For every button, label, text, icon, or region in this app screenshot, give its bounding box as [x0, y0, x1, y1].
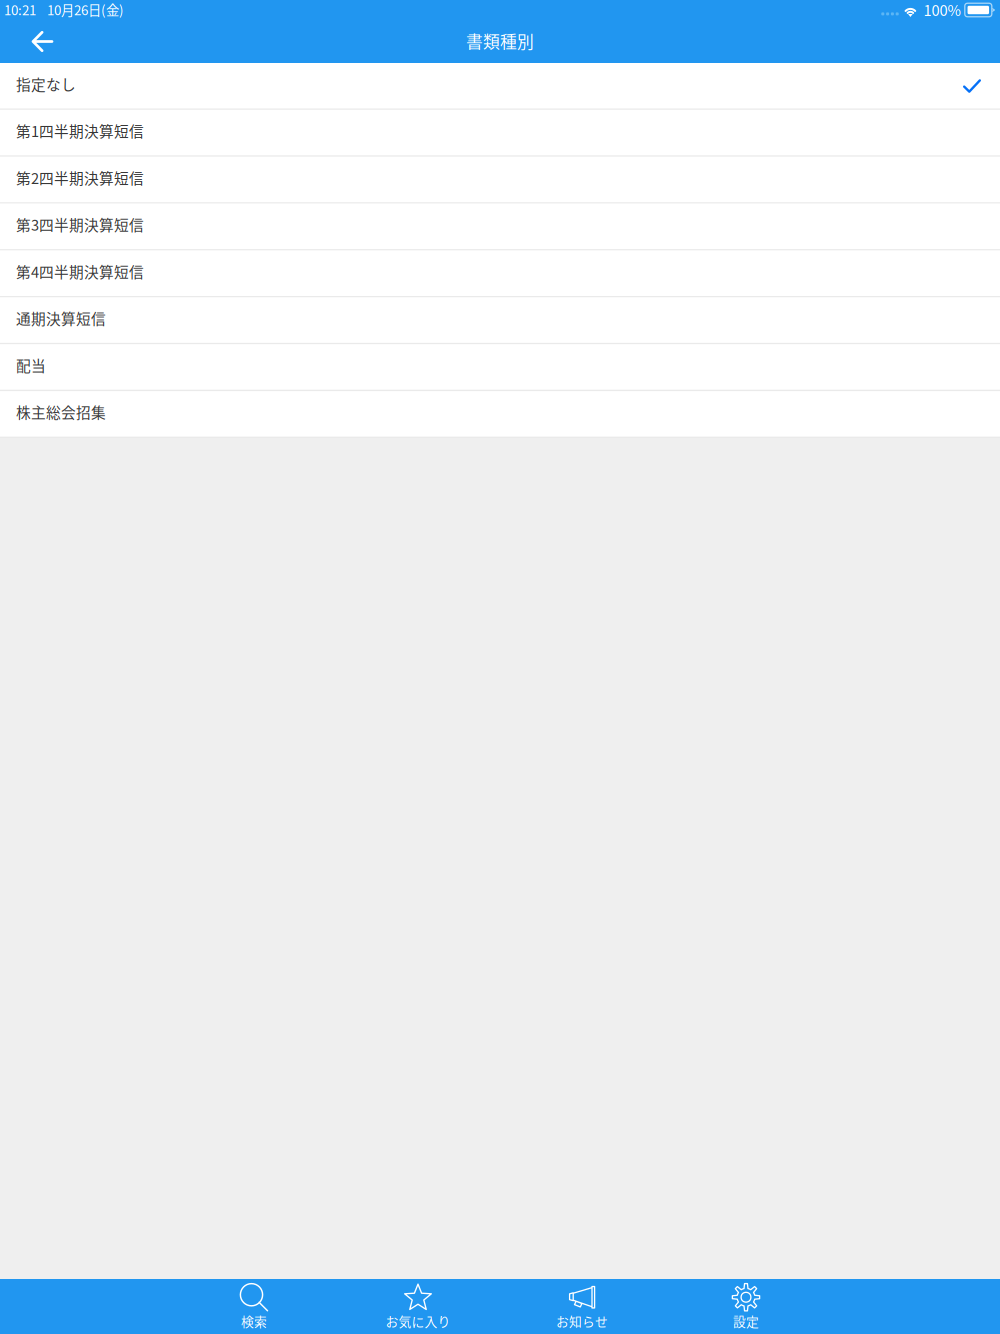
button[interactable]: 検索 [172, 1279, 336, 1334]
staticText: 10:21 [4, 0, 36, 19]
staticText: お知らせ [556, 1312, 608, 1330]
button[interactable]: 設定 [664, 1279, 828, 1334]
staticText: 第2四半期決算短信 [16, 167, 144, 188]
staticText: 通期決算短信 [16, 307, 106, 329]
staticText: 配当 [16, 354, 46, 376]
button[interactable]: 第3四半期決算短信 [0, 204, 1000, 250]
button[interactable]: 第4四半期決算短信 [0, 250, 1000, 297]
staticText: 指定なし [16, 73, 76, 94]
button[interactable]: 第2四半期決算短信 [0, 157, 1000, 204]
button[interactable]: 第1四半期決算短信 [0, 110, 1000, 157]
staticText: 書類種別 [466, 29, 534, 53]
staticText: 100% [924, 0, 962, 20]
staticText: 検索 [241, 1312, 267, 1330]
button[interactable]: 指定なし [0, 63, 1000, 110]
button[interactable]: 配当 [0, 344, 1000, 391]
button[interactable]: 通期決算短信 [0, 297, 1000, 344]
button[interactable]: 株主総会招集 [0, 391, 1000, 438]
staticText: 第4四半期決算短信 [16, 261, 144, 282]
staticText: 株主総会招集 [16, 401, 106, 422]
staticText: 第1四半期決算短信 [16, 120, 144, 141]
button[interactable]: Back [0, 23, 53, 63]
staticText: 10月26日(金) [47, 0, 124, 19]
button[interactable]: お知らせ [500, 1279, 664, 1334]
staticText: 設定 [733, 1312, 759, 1330]
button[interactable]: お気に入り [336, 1279, 500, 1334]
staticText: 第3四半期決算短信 [16, 214, 144, 235]
staticText: お気に入り [385, 1312, 450, 1330]
